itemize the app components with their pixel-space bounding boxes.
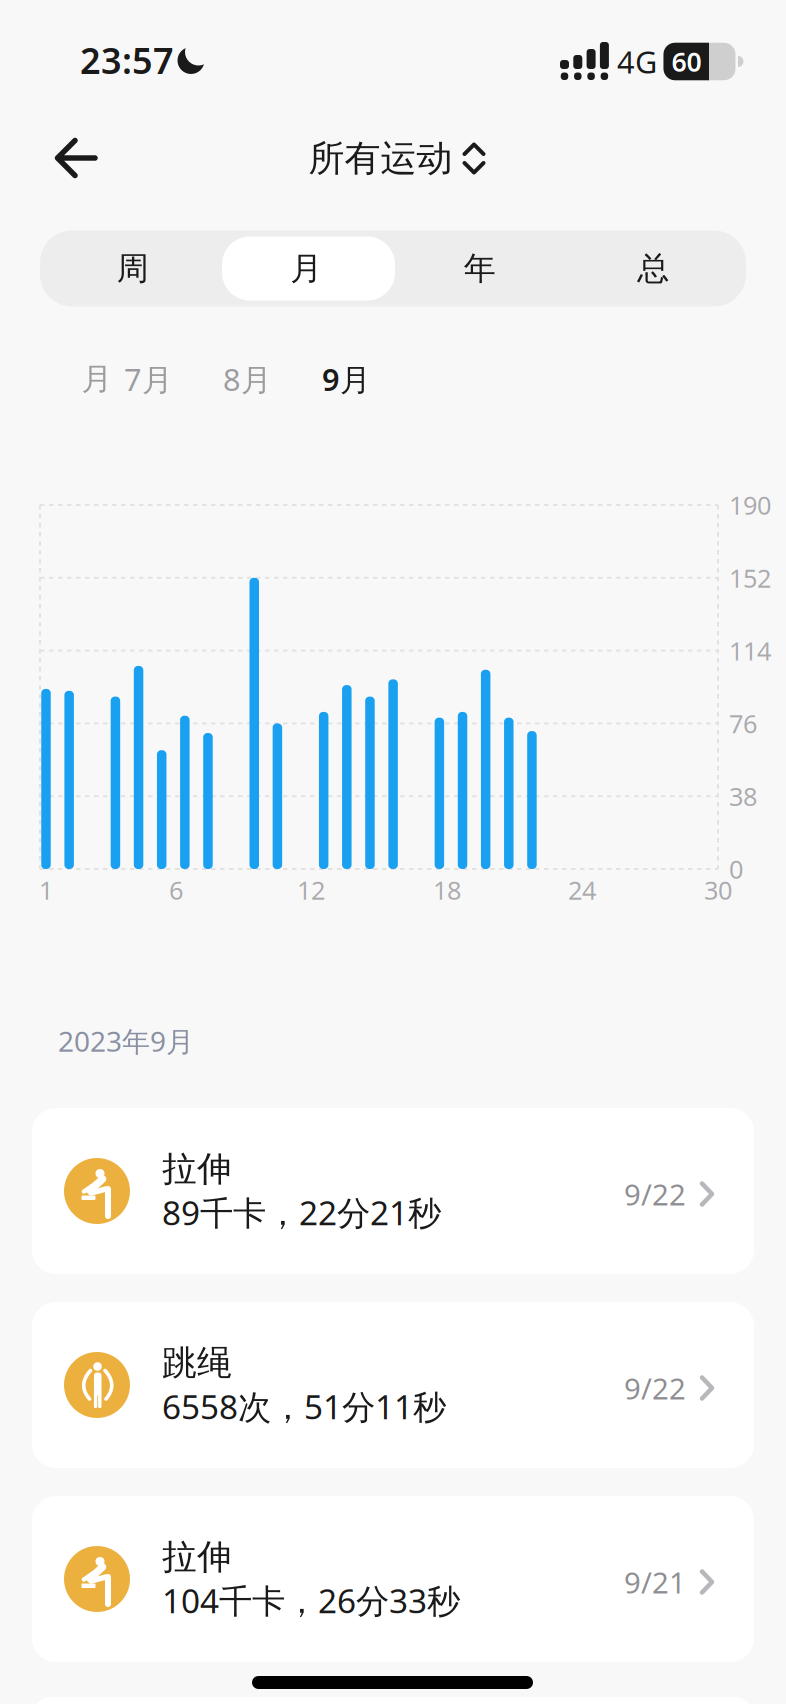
staticText: 拉伸 <box>162 1148 232 1190</box>
button[interactable]: 拉伸 <box>32 1108 754 1274</box>
staticText: 9/21 <box>624 1562 686 1601</box>
staticText: 30 <box>704 873 732 907</box>
button[interactable]: 周 <box>46 230 219 306</box>
staticText: 89千卡，22分21秒 <box>162 1190 441 1234</box>
staticText: 周 <box>117 249 149 288</box>
button[interactable]: 7月 <box>124 359 173 399</box>
button[interactable]: 月 <box>81 360 112 398</box>
button[interactable]: 所有运动 <box>308 136 483 181</box>
staticText: 月 <box>290 249 322 288</box>
staticText: 所有运动 <box>308 136 452 181</box>
staticText: 2023年9月 <box>58 1022 194 1060</box>
staticText: 104千卡，26分33秒 <box>162 1578 460 1622</box>
button[interactable]: Back <box>55 140 97 176</box>
staticText: 9/22 <box>624 1174 686 1213</box>
staticText: 总 <box>637 249 669 288</box>
button[interactable]: 月 <box>219 230 393 306</box>
button[interactable]: 总 <box>566 230 740 306</box>
staticText: 38 <box>729 779 757 813</box>
button[interactable]: 8月 <box>223 359 272 399</box>
staticText: 拉伸 <box>162 1536 232 1578</box>
staticText: 18 <box>433 873 461 907</box>
staticText: 114 <box>729 634 771 667</box>
button[interactable]: 跳绳 <box>32 1302 754 1468</box>
staticText: 1 <box>39 873 53 907</box>
staticText: 12 <box>297 873 325 907</box>
button[interactable]: 9月 <box>322 359 371 399</box>
staticText: 60 <box>671 44 701 79</box>
staticText: 76 <box>729 707 757 740</box>
staticText: 6 <box>169 873 183 907</box>
staticText: 190 <box>729 488 771 522</box>
staticText: 4G <box>617 41 657 82</box>
button[interactable]: 拉伸 <box>32 1496 754 1662</box>
staticText: 24 <box>568 873 596 907</box>
staticText: 9/22 <box>624 1368 686 1407</box>
staticText: 月 <box>81 360 112 398</box>
button[interactable]: 年 <box>393 230 566 306</box>
staticText: 152 <box>729 561 771 595</box>
staticText: 6558次，51分11秒 <box>162 1384 446 1428</box>
staticText: 23:57 <box>80 36 174 84</box>
staticText: 7月 <box>124 359 173 399</box>
staticText: 0 <box>729 852 743 886</box>
staticText: 8月 <box>223 359 272 399</box>
staticText: 跳绳 <box>162 1342 232 1384</box>
staticText: 9月 <box>322 359 371 399</box>
staticText: 年 <box>464 249 496 288</box>
